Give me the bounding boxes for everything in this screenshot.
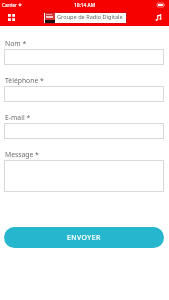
button[interactable]: ENVOYER bbox=[4, 227, 164, 248]
staticText: Groupe de Radio Digitale bbox=[57, 13, 123, 21]
button[interactable] bbox=[4, 86, 164, 102]
button[interactable] bbox=[4, 49, 164, 65]
button[interactable] bbox=[4, 160, 164, 192]
staticText: Téléphone * bbox=[5, 76, 44, 85]
staticText: Carrier bbox=[2, 2, 17, 8]
staticText: Nom * bbox=[5, 39, 27, 48]
button[interactable] bbox=[4, 123, 164, 139]
button[interactable]: Menu bbox=[0, 10, 21, 26]
staticText: E-mail * bbox=[5, 113, 31, 122]
staticText: 10:14 AM bbox=[74, 2, 96, 9]
button[interactable]: Music player bbox=[147, 10, 169, 26]
button[interactable]: Groupe de Radio Digitale bbox=[43, 12, 127, 24]
staticText: ENVOYER bbox=[67, 233, 101, 243]
staticText: Message * bbox=[5, 150, 39, 159]
